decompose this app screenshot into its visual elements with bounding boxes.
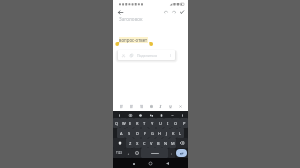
button[interactable]: Clear format <box>176 102 184 110</box>
button[interactable]: H <box>156 128 163 138</box>
button[interactable]: Cut <box>120 52 126 58</box>
button[interactable]: R <box>134 118 141 128</box>
staticText: J <box>166 131 168 136</box>
button[interactable]: Checklist <box>137 102 145 110</box>
button[interactable]: Underline <box>166 102 174 110</box>
button[interactable]: Theme <box>169 112 175 118</box>
button[interactable]: Comma <box>125 148 132 158</box>
staticText: D <box>136 131 139 136</box>
staticText: C <box>143 141 146 146</box>
staticText: F <box>144 131 147 136</box>
staticText: P <box>183 121 186 126</box>
staticText: Заголовок <box>119 16 143 22</box>
staticText: R <box>136 121 139 126</box>
staticText: V <box>150 141 153 146</box>
button[interactable]: Sticker <box>137 112 143 118</box>
button[interactable]: Enter <box>176 149 187 157</box>
button[interactable]: M <box>169 138 176 148</box>
staticText: Q <box>115 121 119 126</box>
staticText: B <box>157 141 160 146</box>
staticText: M <box>171 141 175 146</box>
button[interactable]: A <box>117 128 125 138</box>
staticText: Z <box>129 141 132 146</box>
button[interactable]: P <box>180 118 188 128</box>
button[interactable]: Period <box>168 148 175 158</box>
staticText: L <box>179 131 182 136</box>
button[interactable]: Z <box>126 138 134 148</box>
button[interactable]: I <box>164 118 172 128</box>
button[interactable]: J <box>163 128 170 138</box>
button[interactable]: L <box>177 128 184 138</box>
button[interactable]: Copy <box>128 52 134 58</box>
button[interactable]: Emoji <box>132 148 141 158</box>
staticText: E <box>129 121 132 126</box>
button[interactable]: F <box>141 128 149 138</box>
button[interactable]: Back <box>164 160 171 167</box>
staticText: вопрос-ответ <box>119 37 148 43</box>
staticText: Поделиться <box>137 53 158 58</box>
staticText: Y <box>151 121 154 126</box>
button[interactable]: K <box>170 128 177 138</box>
button[interactable]: Search <box>116 112 122 118</box>
button[interactable]: C <box>141 138 148 148</box>
button[interactable]: U <box>156 118 164 128</box>
button[interactable]: Backspace <box>176 138 188 148</box>
button[interactable]: More options <box>167 52 173 58</box>
button[interactable]: Поделиться <box>137 52 158 58</box>
button[interactable]: Italic <box>156 102 164 110</box>
button[interactable]: D <box>133 128 141 138</box>
staticText: K <box>172 131 175 136</box>
staticText: G <box>151 131 154 136</box>
staticText: U <box>159 121 162 126</box>
staticText: A <box>120 131 123 136</box>
button[interactable]: Y <box>148 118 156 128</box>
button[interactable]: Back <box>116 8 124 16</box>
staticText: S <box>128 131 131 136</box>
staticText: I <box>167 121 169 126</box>
button[interactable]: V <box>148 138 155 148</box>
button[interactable]: E <box>127 118 134 128</box>
button[interactable]: Space <box>141 148 168 158</box>
button[interactable]: W <box>120 118 127 128</box>
button[interactable]: Clipboard <box>158 112 164 118</box>
staticText: N <box>164 141 168 146</box>
button[interactable]: Redo <box>170 8 178 16</box>
button[interactable]: Bold <box>147 102 155 110</box>
staticText: T <box>143 121 146 126</box>
button[interactable]: T <box>141 118 148 128</box>
button[interactable]: B <box>155 138 162 148</box>
button[interactable]: Translate <box>148 112 154 118</box>
button[interactable]: Align <box>117 102 125 110</box>
button[interactable]: Symbols <box>113 148 125 158</box>
button[interactable]: Recents <box>130 160 137 167</box>
button[interactable]: GIF <box>127 112 133 118</box>
button[interactable]: Home <box>147 160 154 167</box>
button[interactable]: Settings <box>179 112 185 118</box>
button[interactable]: Save note <box>178 8 186 16</box>
button[interactable]: G <box>149 128 156 138</box>
button[interactable]: Shift <box>113 138 126 148</box>
button[interactable]: List <box>127 102 135 110</box>
button[interactable]: Q <box>113 118 120 128</box>
staticText: X <box>136 141 139 146</box>
staticText: O <box>174 121 178 126</box>
button[interactable]: N <box>162 138 169 148</box>
button[interactable]: Undo <box>162 8 170 16</box>
staticText: W <box>122 121 126 126</box>
button[interactable]: X <box>134 138 141 148</box>
staticText: ?123 <box>116 151 122 155</box>
button[interactable]: S <box>125 128 133 138</box>
button[interactable]: O <box>172 118 180 128</box>
staticText: H <box>158 131 161 136</box>
